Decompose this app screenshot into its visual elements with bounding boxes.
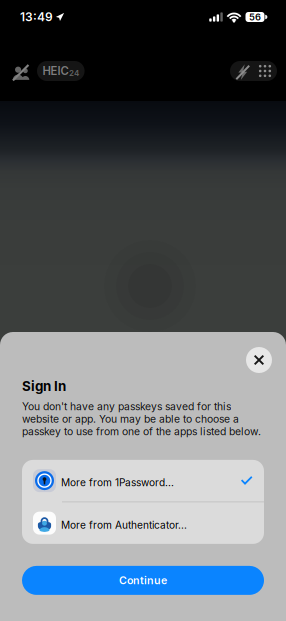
button[interactable]: Close	[246, 347, 272, 373]
staticText: You don't have any passkeys saved for th…	[22, 400, 231, 413]
staticText: Continue	[119, 574, 167, 587]
button[interactable]: Portrait mode off	[10, 61, 28, 81]
button[interactable]: HEIC	[37, 61, 85, 81]
staticText: HEIC	[42, 64, 68, 78]
staticText: website or app. You may be able to choos…	[22, 413, 239, 425]
staticText: More from 1Password...	[61, 476, 174, 489]
button[interactable]: More from 1Password...	[22, 460, 264, 501]
staticText: 56	[249, 11, 261, 23]
staticText: 13:49	[20, 10, 53, 24]
staticText: passkey to use from one of the apps list…	[22, 425, 261, 438]
button[interactable]: Flash off	[230, 61, 253, 81]
staticText: More from Authenticator...	[61, 519, 187, 531]
staticText: 24	[69, 68, 79, 78]
button[interactable]: More from Authenticator...	[22, 502, 264, 544]
staticText: Sign In	[22, 378, 66, 394]
button[interactable]: More camera options	[253, 61, 277, 81]
button[interactable]: Continue	[22, 566, 264, 595]
